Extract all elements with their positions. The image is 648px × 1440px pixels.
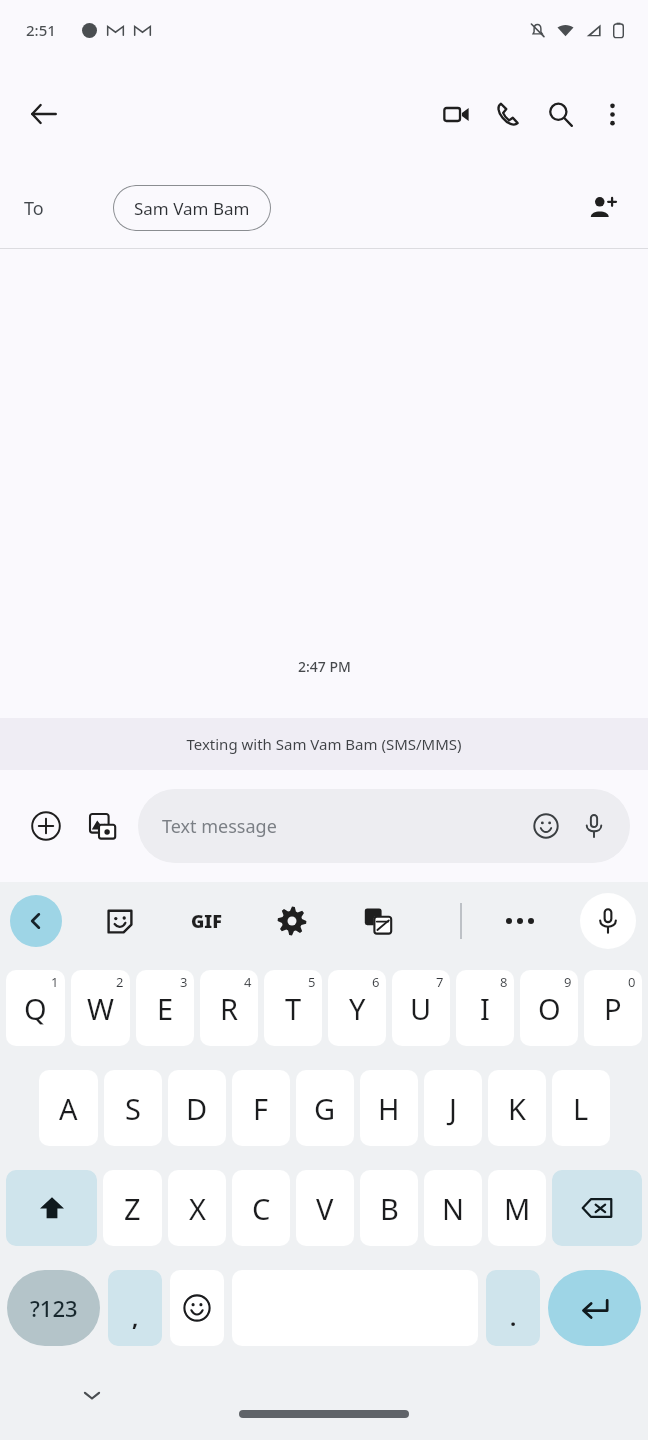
staticText: S bbox=[125, 1089, 141, 1128]
staticText: F bbox=[253, 1089, 269, 1128]
staticText: L bbox=[573, 1089, 589, 1128]
button[interactable]: Gallery bbox=[76, 800, 128, 852]
staticText: 6 bbox=[372, 973, 380, 991]
button[interactable]: GIF bbox=[182, 897, 230, 945]
button[interactable]: Video call bbox=[430, 88, 482, 140]
staticText: 8 bbox=[500, 973, 508, 991]
staticText: Y bbox=[349, 989, 366, 1028]
button[interactable]: C bbox=[232, 1170, 290, 1246]
button[interactable]: E bbox=[136, 970, 194, 1046]
staticText: X bbox=[189, 1189, 206, 1228]
button[interactable]: Call bbox=[482, 88, 534, 140]
button[interactable]: Voice message bbox=[570, 802, 618, 850]
button[interactable]: K bbox=[488, 1070, 546, 1146]
staticText: U bbox=[410, 989, 432, 1028]
staticText: W bbox=[87, 989, 114, 1028]
button[interactable]: R bbox=[200, 970, 258, 1046]
button[interactable]: Settings bbox=[268, 897, 316, 945]
staticText: , bbox=[132, 1302, 139, 1332]
button[interactable]: More options bbox=[586, 88, 638, 140]
button[interactable]: Expand toolbar bbox=[10, 895, 62, 947]
button[interactable]: J bbox=[424, 1070, 482, 1146]
button[interactable]: A bbox=[39, 1070, 98, 1146]
button[interactable]: Z bbox=[103, 1170, 162, 1246]
button[interactable]: Translate bbox=[354, 897, 402, 945]
button[interactable]: Emoji bbox=[170, 1270, 224, 1346]
button[interactable]: Enter bbox=[548, 1270, 641, 1346]
button[interactable]: N bbox=[424, 1170, 482, 1246]
staticText: 3 bbox=[180, 973, 188, 991]
button[interactable]: F bbox=[232, 1070, 290, 1146]
button[interactable]: Shift bbox=[6, 1170, 97, 1246]
staticText: D bbox=[186, 1089, 208, 1128]
button[interactable]: D bbox=[168, 1070, 226, 1146]
button[interactable]: Y bbox=[328, 970, 386, 1046]
button[interactable]: B bbox=[360, 1170, 418, 1246]
button[interactable]: Hide keyboard bbox=[70, 1373, 114, 1417]
staticText: 5 bbox=[308, 973, 316, 991]
staticText: 7 bbox=[436, 973, 444, 991]
staticText: 9 bbox=[564, 973, 572, 991]
staticText: Text message bbox=[162, 814, 277, 839]
button[interactable]: Stickers bbox=[96, 897, 144, 945]
button[interactable]: Text message bbox=[138, 789, 630, 863]
button[interactable]: I bbox=[456, 970, 514, 1046]
staticText: J bbox=[449, 1089, 457, 1128]
staticText: . bbox=[510, 1302, 517, 1332]
button[interactable]: X bbox=[168, 1170, 226, 1246]
staticText: R bbox=[220, 989, 239, 1028]
staticText: K bbox=[508, 1089, 526, 1128]
button[interactable]: Add people bbox=[576, 182, 628, 234]
staticText: 4 bbox=[244, 973, 252, 991]
button[interactable]: Voice input bbox=[580, 893, 636, 949]
staticText: N bbox=[442, 1189, 465, 1228]
staticText: To bbox=[24, 196, 44, 221]
staticText: E bbox=[157, 989, 174, 1028]
button[interactable]: T bbox=[264, 970, 322, 1046]
button[interactable]: H bbox=[360, 1070, 418, 1146]
button[interactable]: S bbox=[104, 1070, 162, 1146]
staticText: ?123 bbox=[30, 1293, 78, 1323]
staticText: Z bbox=[124, 1189, 141, 1228]
button[interactable]: Q bbox=[6, 970, 65, 1046]
button[interactable]: More bbox=[494, 895, 546, 947]
button[interactable]: P bbox=[584, 970, 642, 1046]
button[interactable]: . bbox=[486, 1270, 540, 1346]
staticText: M bbox=[504, 1189, 531, 1228]
staticText: G bbox=[314, 1089, 336, 1128]
staticText: 0 bbox=[628, 973, 636, 991]
button[interactable]: O bbox=[520, 970, 578, 1046]
staticText: C bbox=[252, 1189, 271, 1228]
button[interactable]: L bbox=[552, 1070, 610, 1146]
staticText: GIF bbox=[191, 909, 222, 934]
staticText: I bbox=[480, 989, 490, 1028]
button[interactable]: Emoji bbox=[522, 802, 570, 850]
staticText: 2 bbox=[116, 973, 124, 991]
staticText: 2:47 PM bbox=[298, 657, 351, 676]
button[interactable]: Backspace bbox=[552, 1170, 642, 1246]
button[interactable]: Back bbox=[18, 88, 70, 140]
button[interactable]: V bbox=[296, 1170, 354, 1246]
staticText: 1 bbox=[51, 973, 59, 991]
staticText: 2:51 bbox=[26, 20, 56, 40]
button[interactable]: Add attachment bbox=[20, 800, 72, 852]
button[interactable]: ?123 bbox=[7, 1270, 100, 1346]
staticText: P bbox=[604, 989, 622, 1028]
staticText: Q bbox=[24, 989, 47, 1028]
staticText: B bbox=[380, 1189, 399, 1228]
button[interactable]: Sam Vam Bam bbox=[112, 185, 272, 231]
staticText: Texting with Sam Vam Bam (SMS/MMS) bbox=[186, 734, 462, 754]
staticText: A bbox=[59, 1089, 78, 1128]
button[interactable]: W bbox=[71, 970, 130, 1046]
button[interactable]: U bbox=[392, 970, 450, 1046]
staticText: T bbox=[285, 989, 302, 1028]
staticText: O bbox=[538, 989, 561, 1028]
staticText: H bbox=[378, 1089, 400, 1128]
button[interactable]: , bbox=[108, 1270, 162, 1346]
button[interactable]: G bbox=[296, 1070, 354, 1146]
button[interactable]: M bbox=[488, 1170, 546, 1246]
staticText: V bbox=[316, 1189, 334, 1228]
staticText: Sam Vam Bam bbox=[134, 197, 250, 220]
button[interactable]: Search bbox=[534, 88, 586, 140]
